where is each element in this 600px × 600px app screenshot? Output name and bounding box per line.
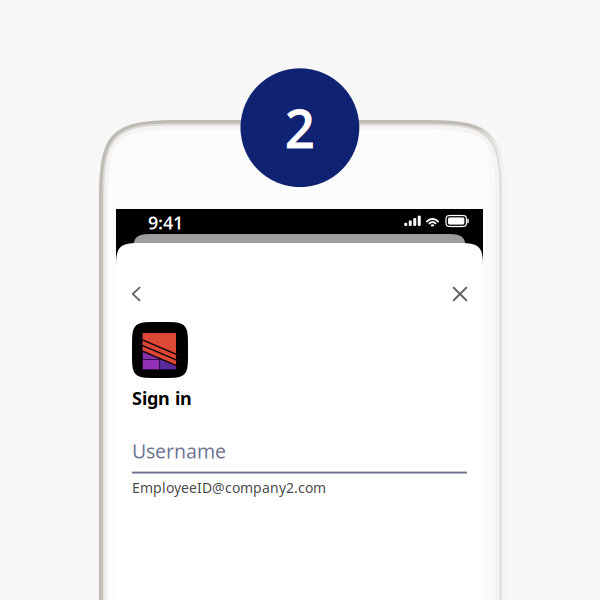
staticText: 2 [284,91,315,164]
staticText: 9:41 [148,210,183,235]
staticText: Username [132,438,226,464]
button[interactable]: Back [0,0,600,600]
staticText: Sign in [132,386,192,410]
button[interactable]: Close [0,0,600,600]
staticText: EmployeeID@company2.com [132,478,326,497]
